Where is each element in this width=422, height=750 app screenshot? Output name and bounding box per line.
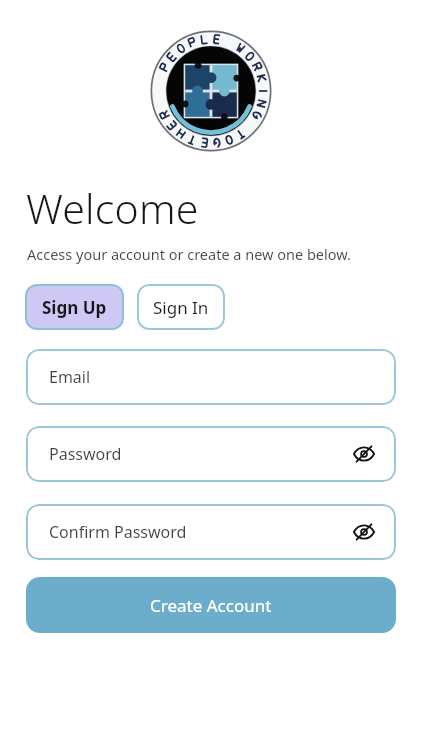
staticText: Sign In	[153, 296, 209, 319]
button[interactable]: Sign Up	[25, 284, 124, 330]
staticText: Password	[49, 443, 122, 465]
staticText: Email	[49, 366, 91, 388]
button[interactable]: Toggle password visibility	[348, 438, 380, 470]
staticText: Create Account	[150, 594, 272, 617]
button[interactable]: Confirm Password	[26, 504, 396, 560]
button[interactable]: Toggle password visibility	[348, 516, 380, 548]
staticText: Access your account or create a new one …	[27, 244, 351, 264]
staticText: Confirm Password	[49, 521, 187, 543]
staticText: Welcome	[26, 180, 199, 236]
button[interactable]: Password	[26, 426, 396, 482]
staticText: Sign Up	[42, 296, 107, 319]
button[interactable]: Create Account	[26, 577, 396, 633]
button[interactable]: Sign In	[137, 284, 225, 330]
other: People Working Together logo	[151, 31, 271, 151]
button[interactable]: Email	[26, 349, 396, 405]
